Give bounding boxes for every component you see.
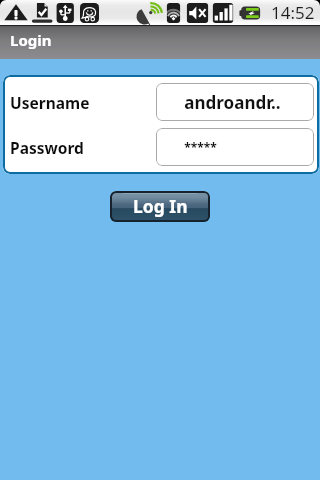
staticText: Login (10, 30, 52, 50)
button[interactable]: ***** (156, 128, 314, 166)
staticText: Username (10, 92, 90, 113)
staticText: Log In (133, 194, 188, 218)
staticText: androandr.. (184, 91, 281, 114)
button[interactable]: androandr.. (156, 83, 314, 121)
staticText: ***** (184, 139, 217, 155)
staticText: 14:52 (271, 1, 315, 24)
staticText: Password (10, 137, 84, 158)
button[interactable]: Log In (110, 191, 210, 222)
